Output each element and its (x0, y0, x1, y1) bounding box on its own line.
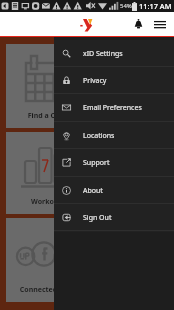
staticText: Locations (83, 131, 115, 141)
staticText: Workouts (6, 197, 90, 207)
button[interactable]: Workouts (6, 132, 90, 214)
button[interactable]: My Schedule (94, 44, 168, 128)
button[interactable]: Progress (94, 132, 168, 214)
staticText: 11:17 AM (139, 1, 172, 11)
staticText: Privacy (83, 76, 107, 86)
button[interactable]: Support (54, 149, 174, 176)
staticText: Sign Out (83, 213, 112, 223)
staticText: Find a Class (6, 111, 90, 121)
staticText: Support (83, 158, 110, 168)
staticText: About (83, 186, 103, 196)
button[interactable]: Notifications (129, 14, 148, 34)
button[interactable]: Connected Apps (6, 218, 90, 302)
staticText: xID Settings (83, 49, 123, 59)
button[interactable]: Locations (54, 122, 174, 149)
staticText: Connected Apps (6, 285, 90, 295)
button[interactable]: Open navigation menu (150, 14, 169, 34)
staticText: 54% (120, 2, 132, 10)
button[interactable]: Find a Class (6, 44, 90, 128)
staticText: Email Preferences (83, 103, 142, 113)
button[interactable]: About (54, 177, 174, 204)
button[interactable]: Privacy (54, 67, 174, 94)
button[interactable]: Settings (94, 218, 168, 302)
button[interactable]: Sign Out (54, 204, 174, 231)
staticText: Progress (94, 197, 168, 207)
button[interactable]: xID Settings (54, 40, 174, 67)
button[interactable]: Email Preferences (54, 94, 174, 121)
